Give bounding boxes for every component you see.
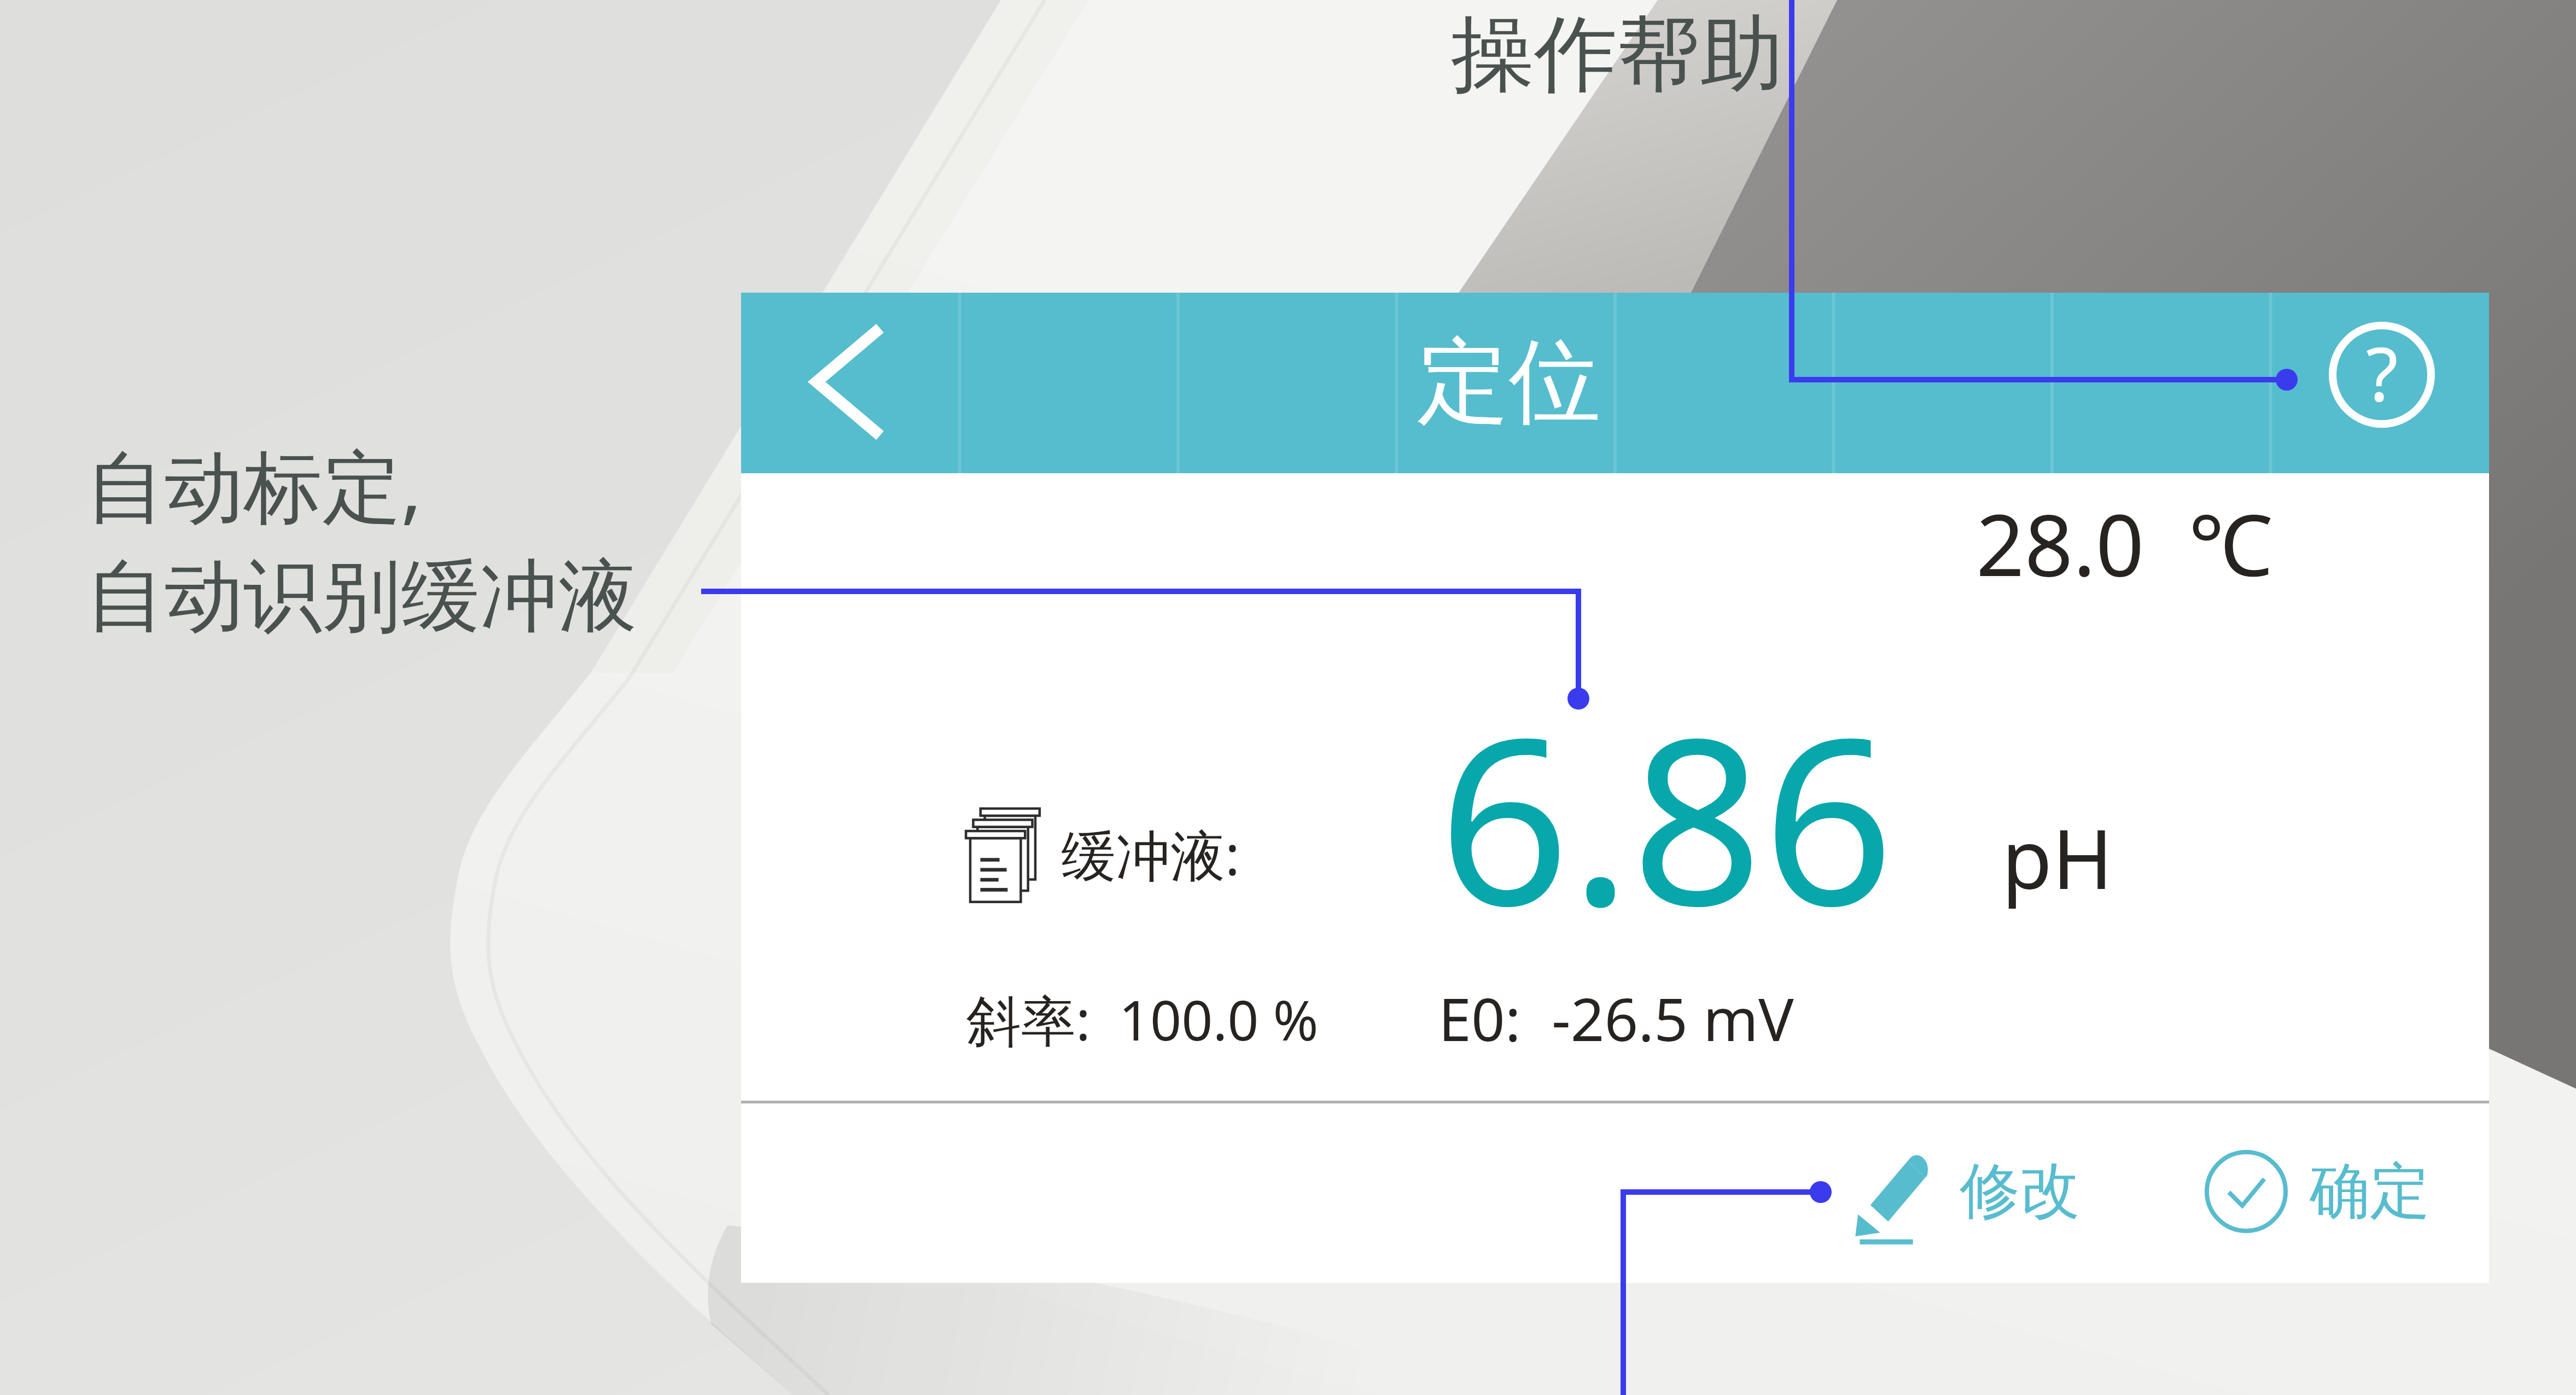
- staticText: 自动标定, 自动识别缓冲液: [86, 431, 637, 647]
- button[interactable]: 修改: [1835, 1132, 2094, 1254]
- staticText: 操作帮助: [1451, 3, 1784, 107]
- staticText: E0: -26.5 mV: [1438, 978, 1794, 1059]
- button[interactable]: Help: [2316, 309, 2447, 440]
- staticText: 6.86: [1438, 659, 1895, 972]
- staticText: 修改: [1960, 1153, 2080, 1229]
- staticText: 确定: [2310, 1154, 2430, 1230]
- staticText: 缓冲液:: [1061, 817, 1240, 892]
- staticText: ?: [2366, 322, 2398, 423]
- staticText: 定位: [1417, 324, 1601, 440]
- button[interactable]: 确定: [2190, 1135, 2444, 1248]
- staticText: 斜率: 100.0 %: [966, 982, 1319, 1057]
- staticText: pH: [2002, 801, 2113, 913]
- button[interactable]: Back: [773, 306, 926, 460]
- staticText: 28.0 ℃: [1976, 485, 2273, 601]
